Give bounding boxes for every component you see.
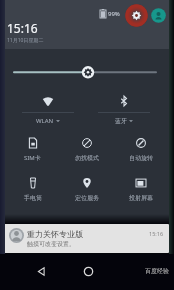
button[interactable]: 自动旋转 xyxy=(114,133,168,167)
button[interactable]: 定位服务 xyxy=(60,173,114,207)
staticText: 定位服务 xyxy=(75,194,99,202)
staticText: 勿扰模式 xyxy=(75,154,99,162)
staticText: 重力关怀专业版 xyxy=(27,229,83,239)
staticText: 蓝牙 xyxy=(115,117,127,125)
button[interactable]: 投射屏幕 xyxy=(114,173,168,207)
button[interactable]: Home xyxy=(82,265,95,278)
staticText: 触摸可改变设置。 xyxy=(27,240,75,248)
button[interactable]: Back xyxy=(35,265,48,278)
staticText: 手电筒 xyxy=(24,194,42,202)
button[interactable]: 蓝牙 xyxy=(86,88,162,126)
staticText: 15:16 xyxy=(149,230,164,237)
staticText: WLAN xyxy=(36,117,54,125)
staticText: 11月10日星期二 xyxy=(7,37,44,44)
staticText: SIM卡 xyxy=(24,154,41,162)
staticText: 15:16 xyxy=(7,20,38,36)
button[interactable]: User profile xyxy=(150,7,167,24)
staticText: 自动旋转 xyxy=(129,154,153,162)
button[interactable]: Settings xyxy=(125,4,148,27)
button[interactable]: Brightness xyxy=(0,62,174,82)
button[interactable]: WLAN xyxy=(10,88,86,126)
button[interactable]: SIM卡 xyxy=(5,133,60,167)
staticText: 投射屏幕 xyxy=(129,194,153,202)
staticText: 百度经验 xyxy=(145,267,169,275)
button[interactable]: 勿扰模式 xyxy=(60,133,114,167)
button[interactable]: 手电筒 xyxy=(5,173,60,207)
button[interactable]: 重力关怀专业版 xyxy=(3,224,169,253)
staticText: 99% xyxy=(108,10,120,18)
